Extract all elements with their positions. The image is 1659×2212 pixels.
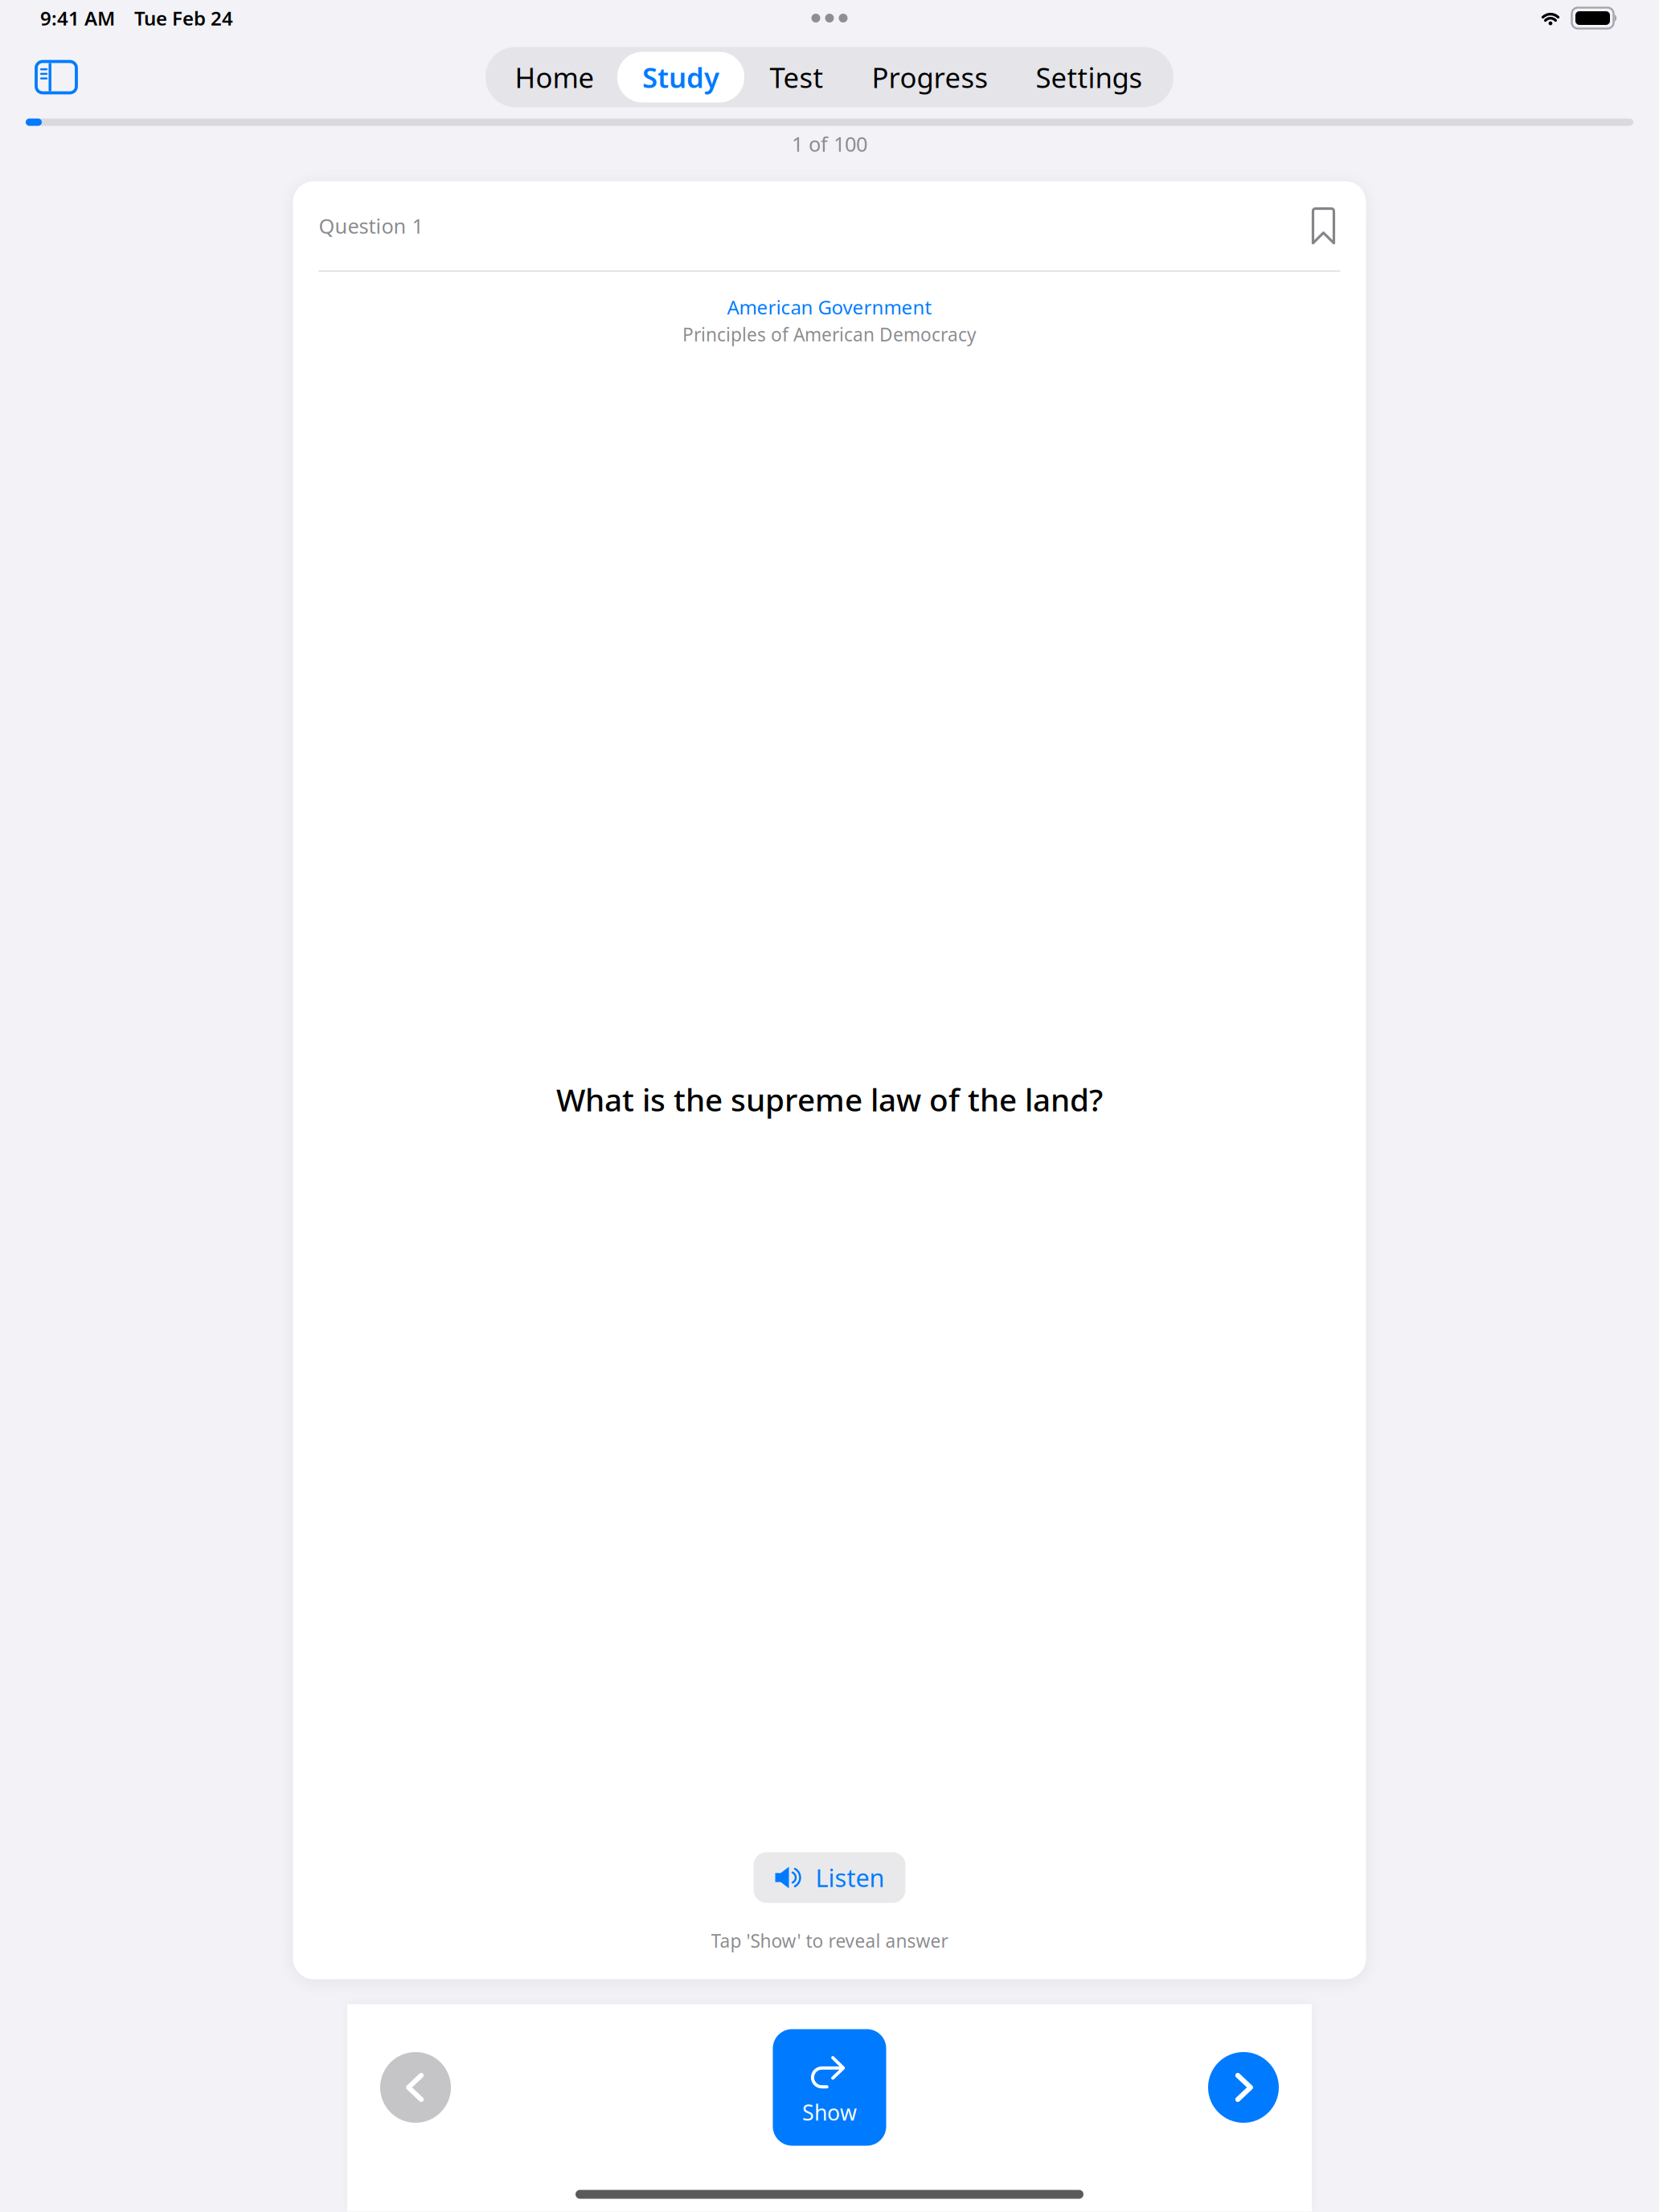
staticText: What is the supreme law of the land? [556, 1079, 1103, 1120]
button[interactable]: Progress [855, 47, 1005, 107]
button[interactable]: Home [485, 47, 624, 107]
button[interactable]: Test [738, 47, 855, 107]
button[interactable]: Settings [1005, 47, 1174, 107]
staticText: Test [770, 59, 823, 96]
button[interactable]: Toggle Sidebar [18, 47, 94, 108]
button[interactable]: Listen [754, 1852, 905, 1903]
staticText: Tue Feb 24 [134, 5, 233, 31]
staticText: Study [642, 59, 719, 96]
button[interactable]: Study [624, 47, 738, 107]
staticText: Listen [815, 1861, 885, 1894]
staticText: Question 1 [319, 212, 423, 239]
staticText: Progress [872, 59, 988, 96]
staticText: Principles of American Democracy [682, 322, 977, 346]
staticText: Tap 'Show' to reveal answer [711, 1929, 948, 1953]
button[interactable]: Bookmark [1307, 205, 1339, 247]
staticText: Show [802, 2098, 857, 2127]
staticText: Home [515, 59, 594, 96]
staticText: Settings [1036, 59, 1143, 96]
staticText: 9:41 AM [40, 5, 115, 31]
staticText: 1 of 100 [792, 130, 867, 157]
button[interactable]: Next [1200, 2044, 1287, 2131]
button[interactable]: Show [773, 2029, 886, 2146]
staticText: American Government [727, 294, 932, 320]
button[interactable]: Previous [372, 2044, 459, 2131]
